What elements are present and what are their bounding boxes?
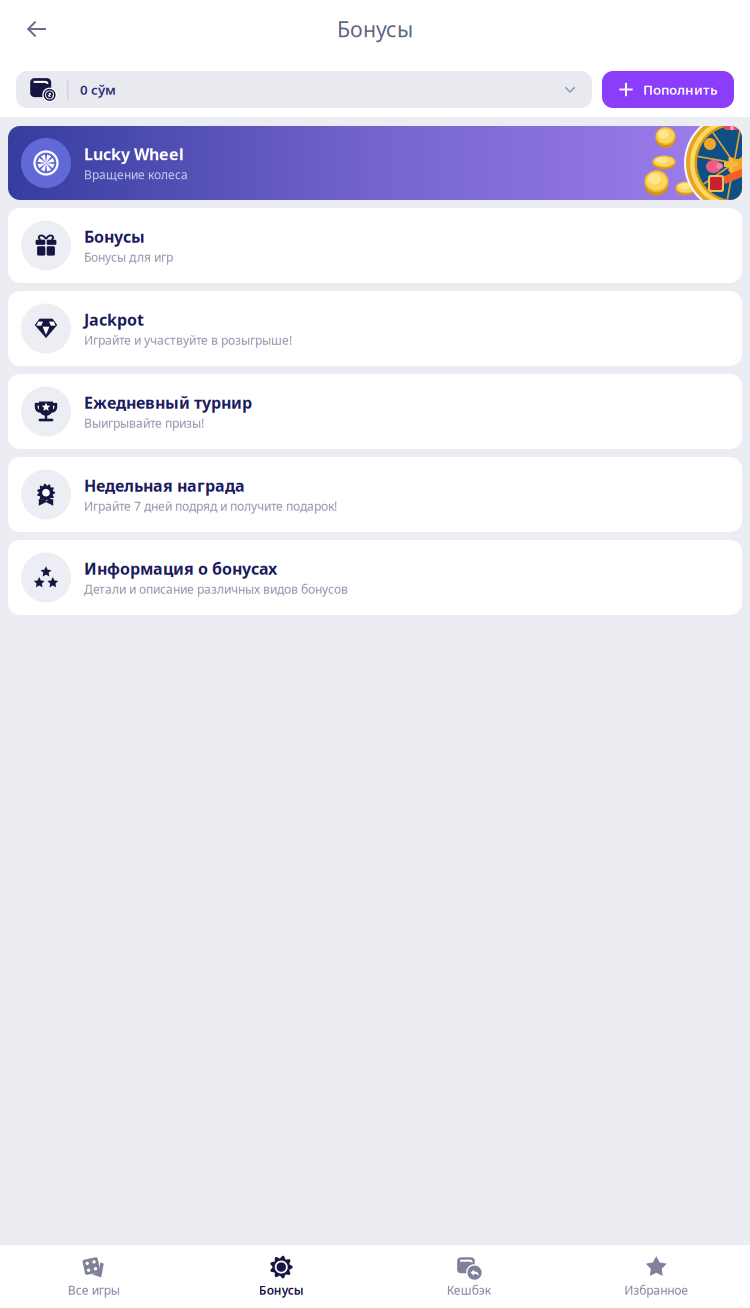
staticText: Вращение колеса	[84, 167, 188, 183]
button[interactable]: Lucky Wheel	[8, 126, 742, 200]
button[interactable]: Бонусы	[187, 1255, 375, 1298]
button[interactable]: Информация о бонусах	[8, 540, 742, 615]
staticText: Бонусы для игр	[84, 249, 173, 265]
staticText: Jackpot	[84, 309, 144, 330]
button[interactable]: Избранное	[562, 1255, 750, 1298]
staticText: Пополнить	[643, 81, 718, 98]
staticText: Выигрывайте призы!	[84, 415, 204, 431]
staticText: Играйте и участвуйте в розыгрыше!	[84, 332, 292, 348]
staticText: Ежедневный турнир	[84, 392, 252, 413]
staticText: Информация о бонусах	[84, 558, 277, 579]
staticText: Lucky Wheel	[84, 143, 184, 165]
staticText: 0 сўм	[80, 81, 116, 98]
button[interactable]: Назад	[0, 7, 60, 51]
staticText: Избранное	[624, 1282, 688, 1298]
staticText: Детали и описание различных видов бонусо…	[84, 581, 348, 597]
staticText: Кешбэк	[447, 1282, 491, 1298]
staticText: Бонусы	[337, 15, 413, 43]
button[interactable]: Ежедневный турнир	[8, 374, 742, 449]
button[interactable]: Все игры	[0, 1255, 187, 1298]
button[interactable]: Пополнить	[602, 71, 734, 108]
button[interactable]: Кешбэк	[375, 1255, 562, 1298]
button[interactable]: Бонусы	[8, 208, 742, 283]
staticText: Бонусы	[84, 226, 145, 247]
staticText: Играйте 7 дней подряд и получите подарок…	[84, 498, 337, 514]
staticText: Недельная награда	[84, 475, 245, 496]
button[interactable]: Недельная награда	[8, 457, 742, 532]
button[interactable]: 0 сўм	[16, 71, 592, 108]
staticText: Все игры	[68, 1282, 120, 1298]
staticText: Бонусы	[259, 1282, 304, 1298]
button[interactable]: Jackpot	[8, 291, 742, 366]
